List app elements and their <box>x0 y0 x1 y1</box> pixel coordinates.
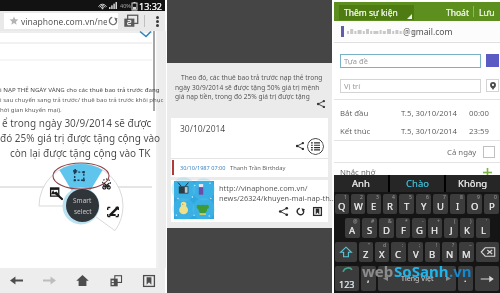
staticText: select <box>74 207 92 216</box>
button[interactable]: List view <box>307 138 324 155</box>
button[interactable]: ' <box>476 218 490 238</box>
button[interactable]: 2 <box>351 194 365 214</box>
staticText: ; <box>419 242 421 249</box>
button[interactable]: Forward <box>33 268 66 293</box>
staticText: Theo đó, các thuê bao trả trước nạp thẻ … <box>181 73 323 82</box>
button[interactable]: : <box>391 242 406 262</box>
staticText: S <box>367 224 373 237</box>
button[interactable]: 6 <box>416 194 431 214</box>
staticText: * <box>405 218 408 225</box>
button[interactable]: 7 <box>433 194 448 214</box>
button[interactable]: ) <box>460 218 474 238</box>
staticText: J <box>450 224 453 237</box>
button[interactable]: Tiếng Việt <box>378 266 456 291</box>
button[interactable]: ! <box>425 242 440 262</box>
button[interactable]: Share <box>296 142 304 150</box>
staticText: còn lại được tặng cộng vào TK <box>10 146 151 160</box>
button[interactable]: Bookmark <box>313 207 322 216</box>
staticText: Lưu <box>479 7 495 19</box>
button[interactable]: - <box>412 218 426 238</box>
button[interactable]: Share <box>317 100 325 108</box>
button[interactable]: * <box>396 218 410 238</box>
button[interactable]: 4 <box>383 194 397 214</box>
button[interactable]: Tựa đề <box>340 54 481 68</box>
button[interactable]: ? <box>442 242 457 262</box>
staticText: 30/10/1987 07:00 <box>180 164 226 172</box>
button[interactable]: ( <box>444 218 458 238</box>
staticText: Anh <box>352 177 370 190</box>
button[interactable]: Smart select <box>66 189 99 222</box>
staticText: Bắt đầu <box>340 108 369 119</box>
staticText: i NẠP THẺ NGÀY VÀNG cho các thuê bao trả… <box>0 85 160 93</box>
staticText: Cả ngày <box>447 147 477 158</box>
button[interactable]: # <box>362 218 377 238</box>
button[interactable]: " <box>359 242 373 262</box>
button[interactable]: , <box>361 266 376 291</box>
button[interactable]: ~ <box>459 242 474 262</box>
button[interactable]: 8 <box>450 194 465 214</box>
staticText: 0 <box>494 194 497 201</box>
staticText: Tựa đề <box>344 56 368 66</box>
button[interactable]: 9 <box>467 194 482 214</box>
staticText: Z <box>363 248 369 261</box>
button[interactable]: d <box>375 242 389 262</box>
staticText: Thoát <box>446 7 469 19</box>
staticText: ể trong ngày 30/9/2014 sẽ được <box>2 116 152 130</box>
button[interactable]: Enter <box>475 266 499 291</box>
staticText: U <box>437 200 444 213</box>
button[interactable]: 1 <box>335 194 349 214</box>
button[interactable]: 3 <box>367 194 381 214</box>
button[interactable]: Menu <box>152 15 162 27</box>
button[interactable]: 30/10/2014 <box>171 118 328 177</box>
button[interactable]: Anh <box>334 175 388 192</box>
button[interactable]: Backspace <box>476 242 499 262</box>
button[interactable]: Lưu <box>474 2 490 21</box>
button[interactable]: 0 <box>484 194 499 214</box>
staticText: F <box>401 224 406 237</box>
button[interactable]: . <box>458 266 473 291</box>
button[interactable]: 5 <box>399 194 414 214</box>
button[interactable]: Refresh <box>296 207 305 216</box>
button[interactable]: Không <box>446 175 500 192</box>
button[interactable]: Kết thúc <box>334 122 500 140</box>
staticText: 00:00 <box>469 108 489 119</box>
button[interactable]: Tabs <box>124 15 138 27</box>
staticText: V <box>413 248 419 261</box>
button[interactable]: Cả ngày <box>334 143 500 161</box>
button[interactable]: http://vinaphone.com.vn/ <box>171 180 328 222</box>
button[interactable]: Thoát <box>439 2 462 21</box>
button[interactable]: Chào <box>390 175 444 192</box>
button[interactable]: + <box>428 218 442 238</box>
button[interactable]: & <box>379 218 394 238</box>
staticText: W <box>354 200 363 213</box>
staticText: i sau chuyển sang trả trước/ thuê bao tr… <box>0 95 164 103</box>
button[interactable]: Bắt đầu <box>334 104 500 122</box>
button[interactable]: Share <box>279 207 288 216</box>
staticText: 23:59 <box>469 126 489 137</box>
button[interactable]: Home <box>66 268 99 293</box>
staticText: Kết thúc <box>340 126 371 137</box>
staticText: G <box>416 224 423 237</box>
button[interactable]: @ <box>345 218 360 238</box>
button[interactable]: ; <box>408 242 423 262</box>
button[interactable]: Shift <box>335 242 357 262</box>
staticText: 13:32 <box>139 0 163 11</box>
button[interactable]: Pick location <box>486 79 499 92</box>
button[interactable]: Bookmarks <box>132 268 165 293</box>
button[interactable]: Tabs <box>99 268 132 293</box>
button[interactable]: Thêm sự kiện <box>339 5 414 20</box>
staticText: N <box>446 248 454 261</box>
staticText: .vn <box>449 261 472 281</box>
button[interactable]: Reload <box>108 16 118 26</box>
staticText: + <box>437 218 440 225</box>
staticText: E <box>371 200 377 213</box>
button[interactable]: Vị trí <box>340 79 481 93</box>
staticText: I <box>456 200 460 213</box>
staticText: ? <box>452 242 455 249</box>
button[interactable]: @gmail.com <box>334 21 500 41</box>
staticText: @ <box>353 218 358 225</box>
button[interactable]: Symbols <box>335 266 359 291</box>
button[interactable]: vinaphone.com.vn/news <box>4 13 118 29</box>
button[interactable]: Back <box>0 268 33 293</box>
